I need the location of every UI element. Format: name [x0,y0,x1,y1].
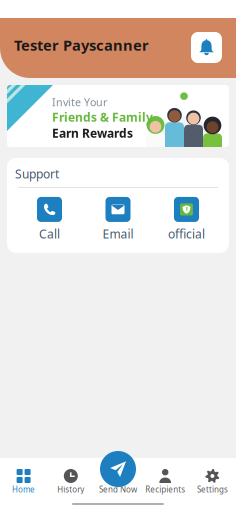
button[interactable]: Settings [189,468,236,495]
button[interactable]: History [47,468,94,495]
button[interactable]: Email [92,197,144,242]
button[interactable]: Call [23,197,75,242]
button[interactable]: official [160,197,212,242]
staticText: Send Now [99,484,137,495]
button[interactable]: Send Now [100,451,136,487]
staticText: Email [102,226,133,242]
staticText: Tester Payscanner [14,35,149,55]
staticText: Invite Your [52,95,107,109]
staticText: Settings [197,484,228,495]
staticText: Home [12,484,35,495]
button[interactable]: Notifications [191,32,222,63]
staticText: official [168,226,205,242]
staticText: History [57,484,84,495]
button[interactable]: Home [0,468,47,495]
staticText: Earn Rewards [52,125,133,141]
button[interactable]: Send Now [94,468,142,495]
staticText: Call [39,226,60,242]
staticText: Recipients [145,484,185,495]
staticText: Friends & Family [52,109,153,125]
staticText: Support [15,166,59,182]
button[interactable]: Recipients [142,468,189,495]
